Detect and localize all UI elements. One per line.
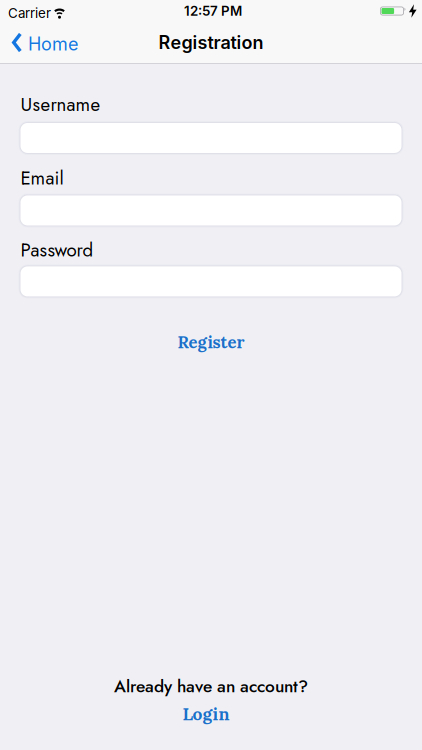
button[interactable]: Email text field [18, 193, 403, 227]
staticText: Registration [158, 32, 263, 53]
staticText: Login [182, 703, 229, 725]
staticText: Email [20, 164, 63, 191]
button[interactable]: Password text field [18, 264, 403, 298]
button[interactable]: Login [182, 699, 229, 725]
staticText: Already have an account? [114, 674, 308, 699]
staticText: Carrier [8, 5, 51, 21]
button[interactable]: Username text field [18, 121, 403, 155]
button[interactable]: Home [0, 32, 78, 53]
button[interactable]: Register [177, 298, 244, 353]
staticText: Register [177, 331, 244, 353]
staticText: Password [20, 236, 93, 263]
staticText: Username [20, 91, 100, 118]
staticText: Home [28, 33, 78, 55]
staticText: 12:57 PM [184, 3, 242, 19]
